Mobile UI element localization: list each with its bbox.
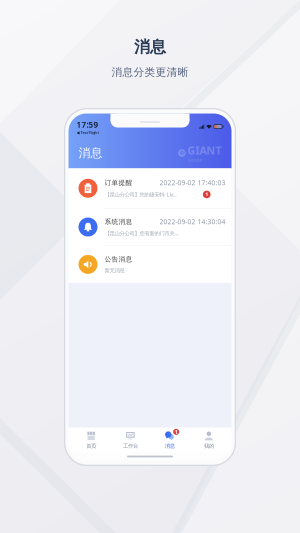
staticText: 消息 <box>165 443 175 449</box>
staticText: 暂无消息 <box>104 267 124 274</box>
staticText: 订单提醒 <box>104 179 132 187</box>
staticText: GROUP <box>187 157 201 163</box>
button[interactable]: 首页 <box>71 431 111 449</box>
staticText: 2022-09-02 14:30:04 <box>159 217 225 226</box>
button[interactable]: 我的 <box>189 431 228 449</box>
staticText: 首页 <box>86 443 96 449</box>
staticText: 公告消息 <box>104 255 132 263</box>
staticText: 2022-09-02 17:40:03 <box>159 178 225 187</box>
button[interactable]: 订单提醒 <box>68 168 231 208</box>
staticText: GIANT <box>187 143 221 157</box>
button[interactable]: 1 <box>150 431 189 449</box>
staticText: 1 <box>175 428 178 435</box>
staticText: 消息 <box>134 37 166 57</box>
button[interactable]: 系统消息 <box>68 209 231 245</box>
staticText: 【昆山分公司】您的捷安特-Liv… <box>104 191 176 198</box>
staticText: 工作台 <box>123 443 138 449</box>
button[interactable]: 工作台 <box>111 431 150 449</box>
staticText: 【昆山分公司】您有新的门市关… <box>104 230 178 237</box>
staticText: 消息分类更清晰 <box>111 66 188 79</box>
button[interactable]: 公告消息 <box>68 246 231 283</box>
staticText: 消息 <box>78 146 102 160</box>
staticText: ◀ TestFlight <box>76 130 99 135</box>
staticText: 17:59 <box>76 119 98 130</box>
staticText: 系统消息 <box>104 218 132 226</box>
staticText: 我的 <box>204 443 214 449</box>
staticText: 1 <box>205 191 208 198</box>
